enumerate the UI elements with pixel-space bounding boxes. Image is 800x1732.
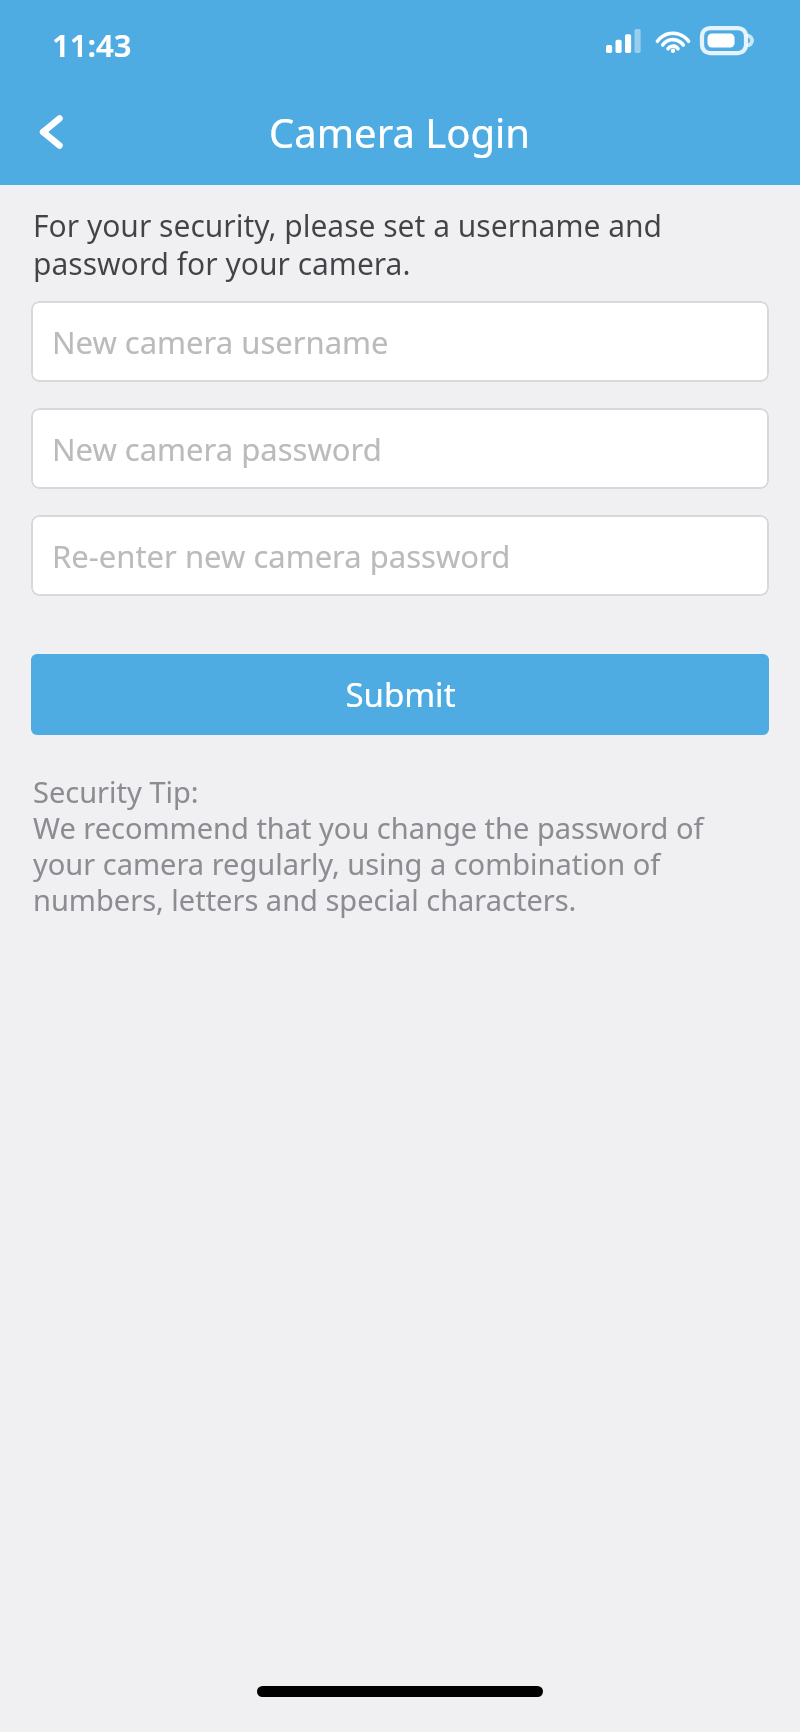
button[interactable]: Submit (31, 654, 769, 735)
staticText: 11:43 (52, 24, 132, 66)
staticText: Submit (345, 672, 456, 717)
button[interactable]: Back (20, 100, 84, 164)
staticText: Re-enter new camera password (52, 535, 511, 577)
staticText: Camera Login (269, 105, 531, 159)
staticText: New camera password (52, 428, 382, 470)
staticText: New camera username (52, 321, 389, 363)
staticText: For your security, please set a username… (33, 205, 770, 284)
button[interactable]: Re-enter new camera password (31, 515, 769, 596)
button[interactable]: New camera username (31, 301, 769, 382)
staticText: Security Tip: We recommend that you chan… (33, 772, 772, 920)
button[interactable]: New camera password (31, 408, 769, 489)
